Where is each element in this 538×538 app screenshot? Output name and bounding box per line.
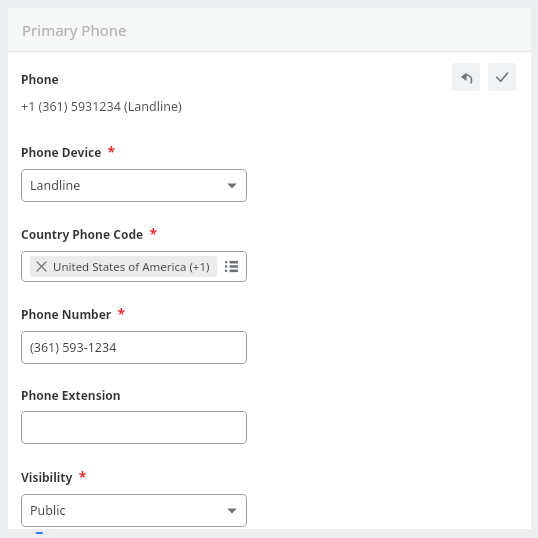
button[interactable]: (361) 593-1234 xyxy=(21,331,247,364)
staticText: Primary Phone xyxy=(22,20,127,40)
other: Remove xyxy=(37,262,46,271)
button[interactable]: Remove xyxy=(21,251,247,282)
staticText: Public xyxy=(30,502,226,519)
staticText: Country Phone Code * xyxy=(21,224,157,243)
button[interactable]: Undo xyxy=(452,63,480,91)
staticText: United States of America (+1) xyxy=(53,259,210,275)
staticText: (361) 593-1234 xyxy=(30,339,117,356)
button[interactable]: Confirm xyxy=(488,63,516,91)
staticText: Phone Number * xyxy=(21,304,126,323)
button[interactable] xyxy=(21,411,247,444)
other: Open dropdown xyxy=(226,505,238,517)
staticText: Phone Extension xyxy=(21,387,121,403)
staticText: Visibility * xyxy=(21,467,87,486)
staticText: +1 (361) 5931234 (Landline) xyxy=(21,98,182,115)
other: Open dropdown xyxy=(226,180,238,192)
button[interactable]: Public xyxy=(21,494,247,527)
staticText: Phone xyxy=(21,71,59,87)
staticText: Phone Device * xyxy=(21,142,116,161)
other: Browse list xyxy=(225,260,238,273)
staticText: Landline xyxy=(30,177,226,194)
button[interactable]: Remove xyxy=(30,256,217,277)
button[interactable]: Landline xyxy=(21,169,247,202)
